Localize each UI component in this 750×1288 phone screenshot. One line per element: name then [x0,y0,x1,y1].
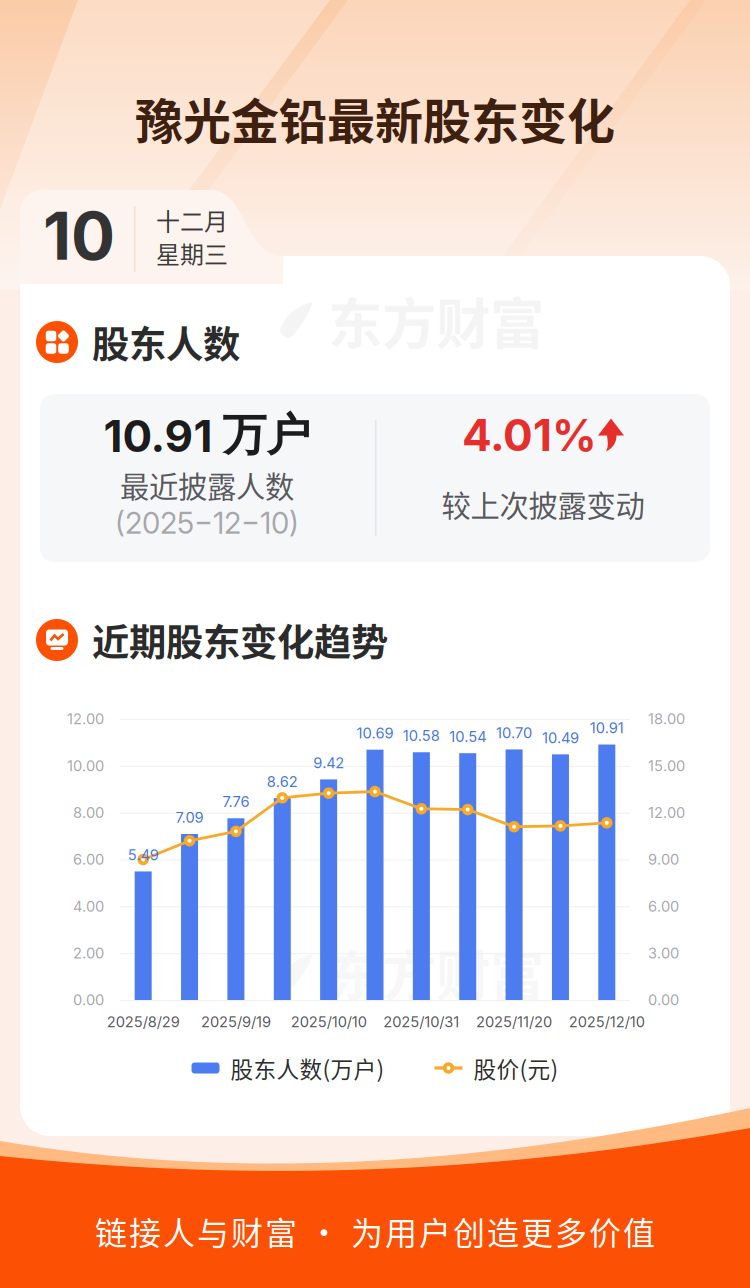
staticText: 2025/11/20 [476,1013,552,1031]
staticText: 10.58 [403,727,440,745]
staticText: 0.00 [73,991,104,1009]
staticText: 3.00 [648,944,679,962]
staticText: 东方财富 [328,933,544,1011]
staticText: 10.91 万户 [103,407,310,463]
staticText: 较上次披露变动 [441,483,644,525]
staticText: 8.00 [73,804,104,821]
staticText: 近期股东变化趋势 [92,613,388,667]
staticText: 2.00 [73,944,104,962]
staticText: 豫光金铅最新股东变化 [135,83,615,153]
staticText: 十二月 [156,203,228,237]
staticText: 星期三 [156,236,228,270]
staticText: 4.00 [73,897,104,915]
staticText: 2025/8/29 [107,1013,180,1031]
staticText: 5.49 [128,846,159,864]
staticText: 8.62 [267,773,298,790]
staticText: 6.00 [73,851,104,868]
staticText: 9.00 [648,851,679,868]
staticText: 2025/9/19 [201,1013,271,1031]
staticText: 7.09 [175,809,203,826]
staticText: 15.00 [648,757,685,775]
staticText: 12.00 [67,710,104,728]
staticText: 股东人数 [92,315,240,369]
staticText: 9.42 [313,754,344,772]
staticText: 12.00 [648,804,685,821]
staticText: 10 [43,196,115,275]
staticText: 10.00 [67,757,104,775]
staticText: 10.69 [356,724,393,742]
staticText: 最近披露人数 [120,464,294,506]
staticText: 链接人与财富 · 为用户创造更多价值 [95,1208,655,1254]
staticText: 7.76 [222,793,249,811]
staticText: 10.70 [496,724,532,742]
staticText: 股价(元) [473,1052,558,1084]
staticText: 6.00 [648,897,679,915]
staticText: 10.54 [449,728,486,745]
staticText: 10.91 [590,719,624,737]
staticText: 18.00 [648,710,685,728]
staticText: 2025/12/10 [569,1013,645,1031]
staticText: 10.49 [542,729,579,747]
staticText: 股东人数(万户) [230,1052,384,1084]
staticText: 4.01% [462,408,597,462]
staticText: (2025−12−10) [115,505,299,541]
staticText: 2025/10/10 [291,1013,367,1031]
staticText: 东方财富 [328,281,544,359]
staticText: 0.00 [648,991,679,1009]
staticText: 2025/10/31 [383,1013,459,1031]
